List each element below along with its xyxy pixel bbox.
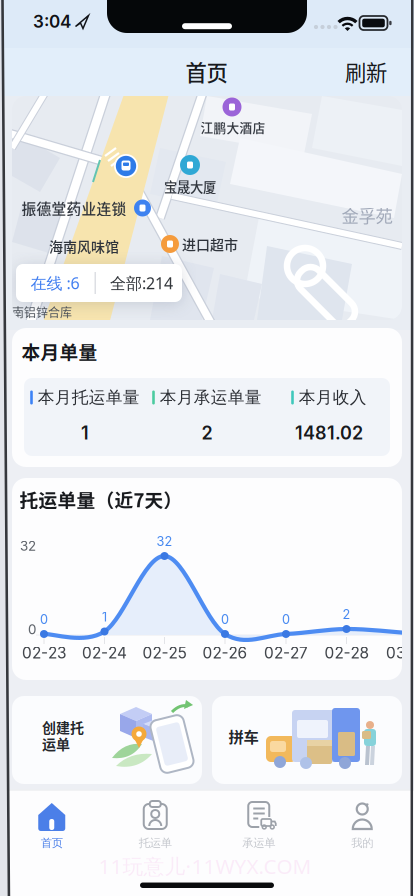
staticText: 02-27 <box>264 644 308 662</box>
staticText: 本月托运单量 <box>38 387 140 408</box>
staticText: 3:04 <box>33 11 71 32</box>
staticText: 托运单量（近7天） <box>19 485 182 512</box>
button[interactable]: 托运单 <box>104 793 207 857</box>
staticText: 0 <box>28 621 36 637</box>
staticText: 本月收入 <box>299 387 367 408</box>
staticText: 拼车 <box>228 725 258 747</box>
staticText: 在线 :6 <box>30 272 79 294</box>
staticText: 1 <box>81 422 89 444</box>
staticText: 02-24 <box>82 644 127 662</box>
staticText: 1481.02 <box>295 422 363 444</box>
staticText: 本月单量 <box>21 337 97 364</box>
staticText: 32 <box>156 534 172 549</box>
staticText: 0 <box>221 612 229 627</box>
staticText: 2 <box>201 422 212 444</box>
button[interactable]: 我的 <box>311 793 414 857</box>
staticText: 02-28 <box>324 644 368 662</box>
staticText: 南铝锌合库 <box>12 303 72 321</box>
staticText: 2 <box>342 607 350 622</box>
button[interactable]: 在线 :6 <box>16 264 182 302</box>
staticText: 1 <box>102 609 107 625</box>
staticText: 金孚苑 <box>341 202 392 228</box>
staticText: 振德堂药业连锁 <box>21 197 126 219</box>
button[interactable]: 承运单 <box>207 793 310 857</box>
staticText: 创建托 <box>42 717 84 737</box>
staticText: 我的 <box>351 836 373 850</box>
button[interactable]: 拼车 <box>212 696 402 784</box>
staticText: 全部:214 <box>110 272 173 294</box>
button[interactable]: 首页 <box>0 793 103 857</box>
staticText: 运单 <box>42 733 70 754</box>
button[interactable]: 创建托 <box>12 696 202 784</box>
staticText: 03-01 <box>386 644 414 662</box>
staticText: 02-23 <box>22 644 66 662</box>
staticText: 江鹏大酒店 <box>200 118 265 136</box>
button[interactable]: 刷新 <box>336 51 396 91</box>
staticText: 托运单 <box>139 836 172 850</box>
staticText: 02-25 <box>142 644 186 662</box>
staticText: 02-26 <box>202 644 247 662</box>
staticText: 首页 <box>185 56 227 87</box>
staticText: 0 <box>282 612 290 627</box>
staticText: 0 <box>40 612 48 627</box>
staticText: 宝晟大厦 <box>164 177 216 196</box>
staticText: 本月承运单量 <box>160 387 262 408</box>
staticText: 32 <box>20 538 36 554</box>
staticText: 11玩意儿·11WYX.COM <box>98 852 311 880</box>
staticText: 0 <box>403 611 411 626</box>
staticText: 首页 <box>41 836 63 850</box>
staticText: 海南风味馆 <box>49 236 119 256</box>
staticText: 刷新 <box>345 56 387 87</box>
staticText: 承运单 <box>242 836 275 850</box>
staticText: 进口超市 <box>182 234 238 254</box>
